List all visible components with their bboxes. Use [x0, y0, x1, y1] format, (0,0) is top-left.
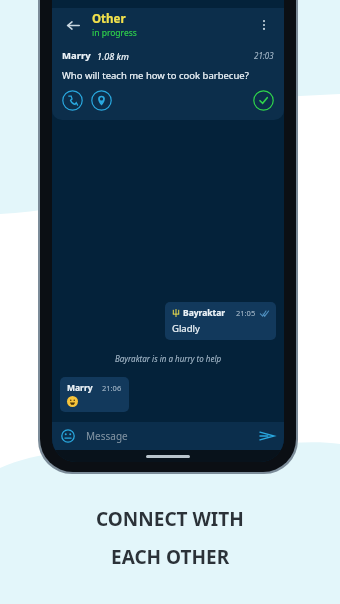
- button[interactable]: Call: [62, 90, 83, 111]
- staticText: CONNECT WITH: [96, 506, 244, 532]
- button[interactable]: Back: [60, 12, 86, 38]
- staticText: EACH OTHER: [111, 544, 230, 570]
- button[interactable]: Location: [91, 90, 112, 111]
- staticText: in progress: [92, 27, 137, 39]
- other: Emoji: [60, 428, 76, 444]
- staticText: Marry: [67, 382, 93, 394]
- staticText: Other: [92, 11, 126, 27]
- button[interactable]: Emoji: [52, 422, 284, 450]
- staticText: 21:03: [254, 50, 274, 61]
- staticText: Bayraktar: [183, 307, 226, 319]
- staticText: 21:06: [102, 383, 122, 393]
- staticText: Marry: [62, 49, 91, 62]
- staticText: Bayraktar is in a hurry to help: [115, 353, 222, 364]
- staticText: Gladly: [172, 322, 200, 335]
- staticText: Message: [86, 429, 128, 443]
- staticText: 1.08 km: [97, 50, 129, 62]
- staticText: 21:05: [236, 308, 256, 318]
- button[interactable]: Bayraktar: [165, 302, 276, 340]
- button[interactable]: More options: [252, 13, 276, 37]
- button[interactable]: Send: [258, 427, 276, 445]
- button[interactable]: Accept: [253, 90, 274, 111]
- staticText: Who will teach me how to cook barbecue?: [62, 69, 249, 82]
- button[interactable]: Marry: [60, 377, 129, 412]
